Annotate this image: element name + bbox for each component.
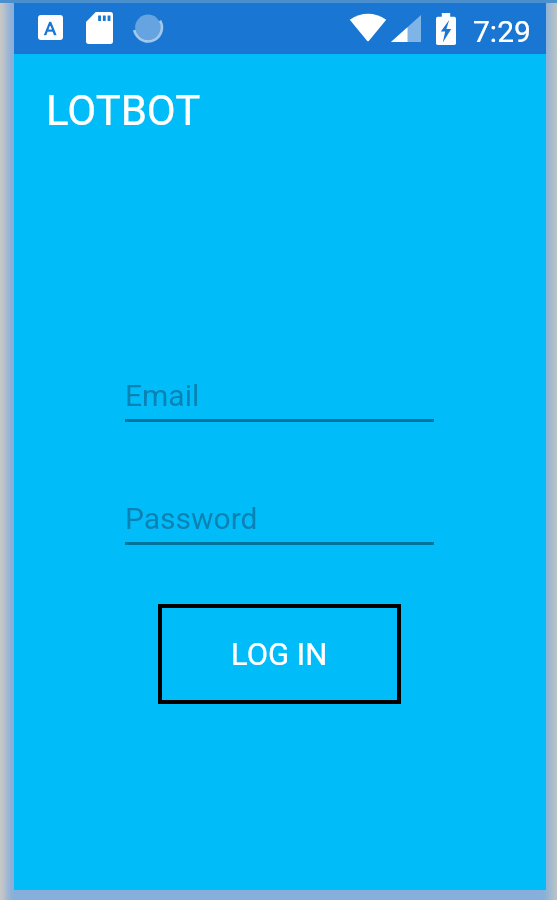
other: Mobile signal xyxy=(391,15,421,42)
other: Wi-Fi xyxy=(349,13,387,41)
other: Battery charging xyxy=(436,13,456,45)
staticText: Email xyxy=(125,378,200,413)
button[interactable]: LOG IN xyxy=(158,604,401,704)
other: SD card xyxy=(86,12,113,44)
button[interactable]: Email xyxy=(125,378,434,422)
staticText: LOG IN xyxy=(231,636,328,672)
staticText: LOTBOT xyxy=(46,86,201,135)
staticText: A xyxy=(44,17,57,39)
other: Syncing xyxy=(133,12,163,43)
staticText: 7:29 xyxy=(473,14,531,49)
other: Keyboard layout xyxy=(38,15,63,40)
staticText: Password xyxy=(125,501,258,536)
button[interactable]: Password xyxy=(125,501,434,545)
